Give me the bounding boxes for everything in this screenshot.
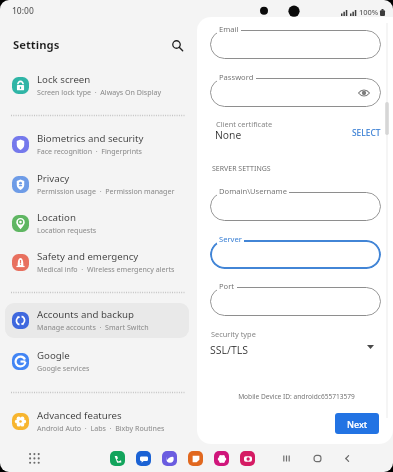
staticText: Port (219, 281, 235, 291)
staticText: Server (219, 234, 242, 244)
button[interactable]: Security type dropdown (359, 336, 381, 358)
button[interactable]: Google (5, 344, 189, 378)
staticText: Client certificate (216, 119, 273, 129)
button[interactable] (210, 287, 381, 316)
staticText: Location (37, 211, 76, 224)
button[interactable]: Home (307, 448, 327, 468)
button[interactable]: Show password (210, 78, 381, 107)
staticText: Manage accounts · Smart Switch (37, 322, 149, 332)
button[interactable]: Internet (162, 451, 177, 466)
button[interactable]: Biometrics and security (5, 127, 189, 161)
staticText: SERVER SETTINGS (212, 164, 271, 174)
staticText: Permission usage · Permission manager (37, 186, 175, 196)
button[interactable]: Apps (24, 448, 44, 468)
button[interactable] (210, 192, 381, 221)
button[interactable] (210, 240, 381, 269)
button[interactable]: Location (5, 206, 189, 240)
staticText: Next (347, 418, 368, 430)
staticText: 10:00 (12, 5, 34, 17)
staticText: Android Auto · Labs · Bixby Routines (37, 423, 165, 433)
staticText: Domain\Username (219, 186, 287, 196)
button[interactable]: Messages (136, 451, 151, 466)
staticText: Settings (13, 37, 60, 52)
button[interactable]: Advanced features (5, 404, 189, 438)
button[interactable]: Gallery (214, 451, 229, 466)
staticText: Mobile Device ID: androidc655713579 (203, 392, 390, 401)
button[interactable]: Privacy (5, 167, 189, 201)
button[interactable]: Accounts and backup (5, 303, 189, 337)
button[interactable]: Show password (358, 87, 370, 99)
button[interactable]: Search (164, 32, 190, 58)
staticText: Accounts and backup (37, 308, 135, 321)
staticText: Google (37, 349, 70, 362)
staticText: Security type (211, 329, 256, 339)
button[interactable]: Camera (240, 451, 255, 466)
staticText: Screen lock type · Always On Display (37, 87, 162, 97)
button[interactable]: Notes (188, 451, 203, 466)
button[interactable]: Recents (276, 448, 296, 468)
staticText: SSL/TLS (210, 343, 249, 357)
staticText: Face recognition · Fingerprints (37, 146, 142, 156)
button[interactable]: Next (335, 413, 379, 434)
staticText: Password (219, 72, 254, 82)
staticText: SELECT (352, 127, 381, 138)
staticText: Lock screen (37, 73, 91, 86)
staticText: Google services (37, 363, 90, 373)
staticText: Safety and emergency (37, 250, 139, 263)
staticText: Location requests (37, 225, 97, 235)
button[interactable]: SELECT (348, 124, 385, 141)
staticText: Email (219, 24, 239, 34)
staticText: Advanced features (37, 409, 122, 422)
button[interactable]: Lock screen (5, 68, 189, 102)
button[interactable]: Safety and emergency (5, 245, 189, 279)
staticText: Biometrics and security (37, 132, 144, 145)
staticText: None (215, 128, 242, 142)
staticText: 100% (359, 7, 379, 17)
button[interactable]: Phone (110, 451, 125, 466)
staticText: Privacy (37, 172, 70, 185)
button[interactable]: Back (337, 448, 357, 468)
button[interactable] (210, 30, 381, 59)
staticText: Medical info · Wireless emergency alerts (37, 264, 175, 274)
